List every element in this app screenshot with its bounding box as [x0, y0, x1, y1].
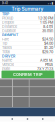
staticText: Total — [2, 50, 10, 54]
staticText: Fare — [2, 37, 9, 41]
staticText: DRIVER — [2, 54, 15, 58]
staticText: Alex M. — [40, 58, 53, 63]
button[interactable]: Back — [9, 116, 15, 121]
staticText: 9:41 — [1, 1, 8, 5]
staticText: PAYMENT — [2, 33, 18, 37]
staticText: $24.50 — [42, 37, 53, 41]
staticText: $4.00 — [44, 41, 53, 46]
staticText: 35 min — [42, 28, 53, 33]
staticText: Plate — [2, 67, 10, 71]
button[interactable]: Home — [24, 116, 30, 121]
staticText: $1.20 — [44, 45, 53, 50]
staticText: CONFIRM TRIP — [13, 72, 43, 77]
staticText: Distance — [2, 24, 17, 29]
staticText: Prius — [45, 62, 53, 67]
staticText: Taxes — [2, 45, 12, 50]
staticText: Pickup — [2, 16, 13, 20]
staticText: Trip Summary — [11, 6, 43, 12]
button[interactable]: CONFIRM TRIP — [1, 70, 54, 78]
staticText: 12:30 PM — [38, 16, 53, 20]
staticText: $29.70 — [42, 50, 53, 54]
staticText: TRIP — [2, 12, 9, 16]
staticText: 1:05 PM — [40, 20, 53, 24]
staticText: Dropoff — [2, 20, 14, 24]
staticText: 8.4 mi — [43, 24, 53, 29]
staticText: Vehicle — [2, 62, 14, 67]
staticText: Duration — [2, 28, 16, 33]
staticText: 7XYZ123 — [37, 67, 53, 71]
staticText: ◦◦▮ — [47, 1, 53, 5]
staticText: Name — [2, 58, 12, 63]
staticText: Tip — [2, 41, 7, 46]
button[interactable]: Recents — [40, 116, 46, 121]
